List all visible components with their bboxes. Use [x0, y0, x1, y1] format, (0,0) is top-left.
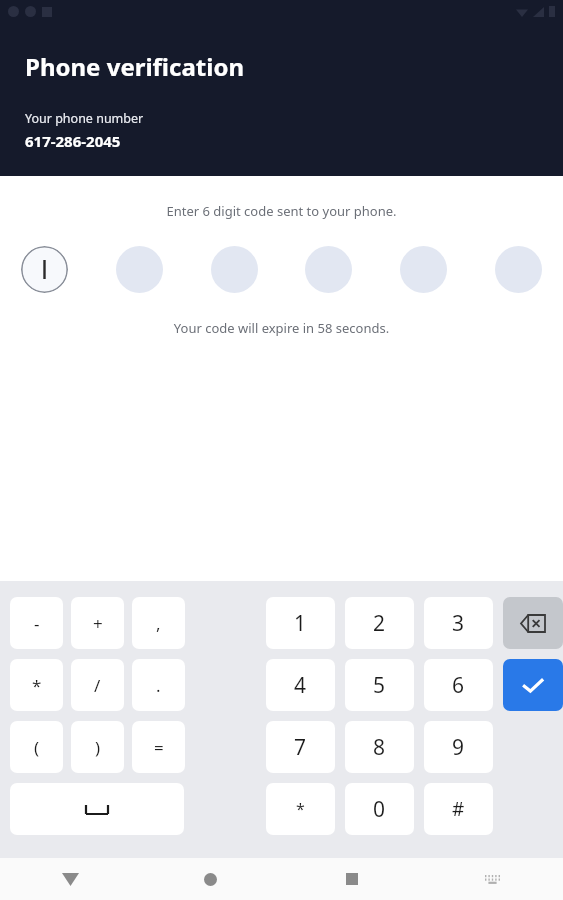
button[interactable]: 0: [345, 783, 414, 835]
staticText: .: [156, 674, 161, 697]
button[interactable]: .: [132, 659, 185, 711]
staticText: (: [34, 736, 40, 759]
staticText: 3: [452, 609, 465, 638]
button[interactable]: 9: [424, 721, 493, 773]
button[interactable]: /: [71, 659, 124, 711]
button[interactable]: 1: [266, 597, 335, 649]
button[interactable]: 5: [345, 659, 414, 711]
button[interactable]: Back: [0, 858, 140, 900]
button[interactable]: *: [10, 659, 63, 711]
staticText: 2: [373, 609, 386, 638]
staticText: +: [93, 612, 103, 635]
staticText: 8: [373, 733, 386, 762]
staticText: 1: [294, 609, 307, 638]
staticText: 6: [452, 671, 465, 700]
button[interactable]: [21, 246, 68, 293]
button[interactable]: 6: [424, 659, 493, 711]
button[interactable]: 8: [345, 721, 414, 773]
button[interactable]: [305, 246, 352, 293]
button[interactable]: [495, 246, 542, 293]
staticText: 617-286-2045: [25, 131, 121, 151]
staticText: 7: [294, 733, 307, 762]
staticText: -: [34, 612, 40, 635]
staticText: *: [32, 674, 42, 697]
staticText: /: [94, 674, 101, 697]
button[interactable]: 2: [345, 597, 414, 649]
button[interactable]: Submit: [503, 659, 563, 711]
button[interactable]: [116, 246, 163, 293]
button[interactable]: 3: [424, 597, 493, 649]
staticText: 9: [452, 733, 465, 762]
button[interactable]: [211, 246, 258, 293]
button[interactable]: =: [132, 721, 185, 773]
button[interactable]: [400, 246, 447, 293]
button[interactable]: Switch keyboard: [422, 858, 563, 900]
button[interactable]: [10, 783, 184, 835]
staticText: ): [95, 736, 101, 759]
staticText: 4: [294, 671, 307, 700]
button[interactable]: 4: [266, 659, 335, 711]
button[interactable]: Home: [140, 858, 281, 900]
button[interactable]: -: [10, 597, 63, 649]
staticText: Your code will expire in 58 seconds.: [0, 319, 563, 337]
button[interactable]: #: [424, 783, 493, 835]
staticText: Your phone number: [25, 110, 144, 127]
staticText: 0: [373, 795, 386, 824]
button[interactable]: Backspace: [503, 597, 563, 649]
staticText: Enter 6 digit code sent to your phone.: [0, 202, 563, 220]
button[interactable]: (: [10, 721, 63, 773]
staticText: *: [296, 798, 305, 820]
staticText: 5: [373, 671, 386, 700]
button[interactable]: ): [71, 721, 124, 773]
staticText: #: [452, 796, 465, 822]
staticText: =: [154, 736, 164, 759]
button[interactable]: +: [71, 597, 124, 649]
button[interactable]: 7: [266, 721, 335, 773]
staticText: ,: [156, 612, 161, 635]
staticText: Phone verification: [25, 50, 244, 83]
button[interactable]: *: [266, 783, 335, 835]
button[interactable]: Recents: [281, 858, 422, 900]
button[interactable]: ,: [132, 597, 185, 649]
